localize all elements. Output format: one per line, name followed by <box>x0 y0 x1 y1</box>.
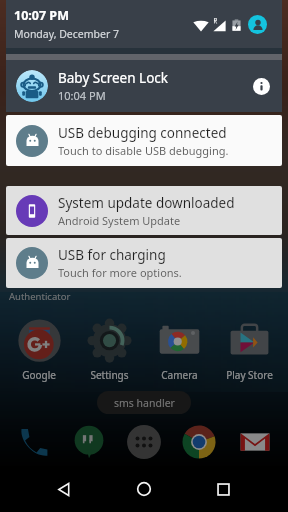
button[interactable]: Google <box>8 319 70 382</box>
staticText: Authenticator <box>9 290 71 303</box>
button[interactable]: All apps <box>122 420 166 464</box>
button[interactable]: Baby Screen Lock <box>6 60 282 112</box>
staticText: 10:07 PM <box>14 7 69 24</box>
staticText: Android System Update <box>58 213 181 228</box>
staticText: Camera <box>161 368 198 382</box>
button[interactable]: USB debugging connected <box>6 115 282 166</box>
staticText: USB debugging connected <box>58 124 227 142</box>
staticText: 10:04 PM <box>58 88 106 103</box>
button[interactable]: Settings <box>78 319 140 382</box>
button[interactable]: Notification info <box>253 78 270 95</box>
button[interactable]: Account <box>248 15 267 34</box>
button[interactable]: Chrome <box>177 420 221 464</box>
button[interactable]: Back <box>44 469 84 509</box>
button[interactable]: Gmail <box>233 420 277 464</box>
staticText: Settings <box>90 368 129 382</box>
staticText: Monday, December 7 <box>14 27 120 41</box>
button[interactable]: Camera <box>148 319 210 382</box>
staticText: Google <box>22 368 56 382</box>
staticText: Touch to disable USB debugging. <box>58 143 229 158</box>
button[interactable]: USB for charging <box>6 238 282 288</box>
button[interactable]: Play Store <box>218 319 280 382</box>
staticText: Touch for more options. <box>58 265 182 280</box>
staticText: USB for charging <box>58 246 166 264</box>
staticText: System update downloaded <box>58 194 235 212</box>
button[interactable]: System update downloaded <box>6 186 282 235</box>
staticText: Play Store <box>226 368 273 382</box>
staticText: sms handler <box>114 396 175 410</box>
button[interactable]: Recents <box>203 469 243 509</box>
button[interactable]: Home <box>124 469 164 509</box>
staticText: Baby Screen Lock <box>58 69 168 87</box>
button[interactable]: Hangouts <box>67 420 111 464</box>
button[interactable]: Phone <box>11 420 55 464</box>
